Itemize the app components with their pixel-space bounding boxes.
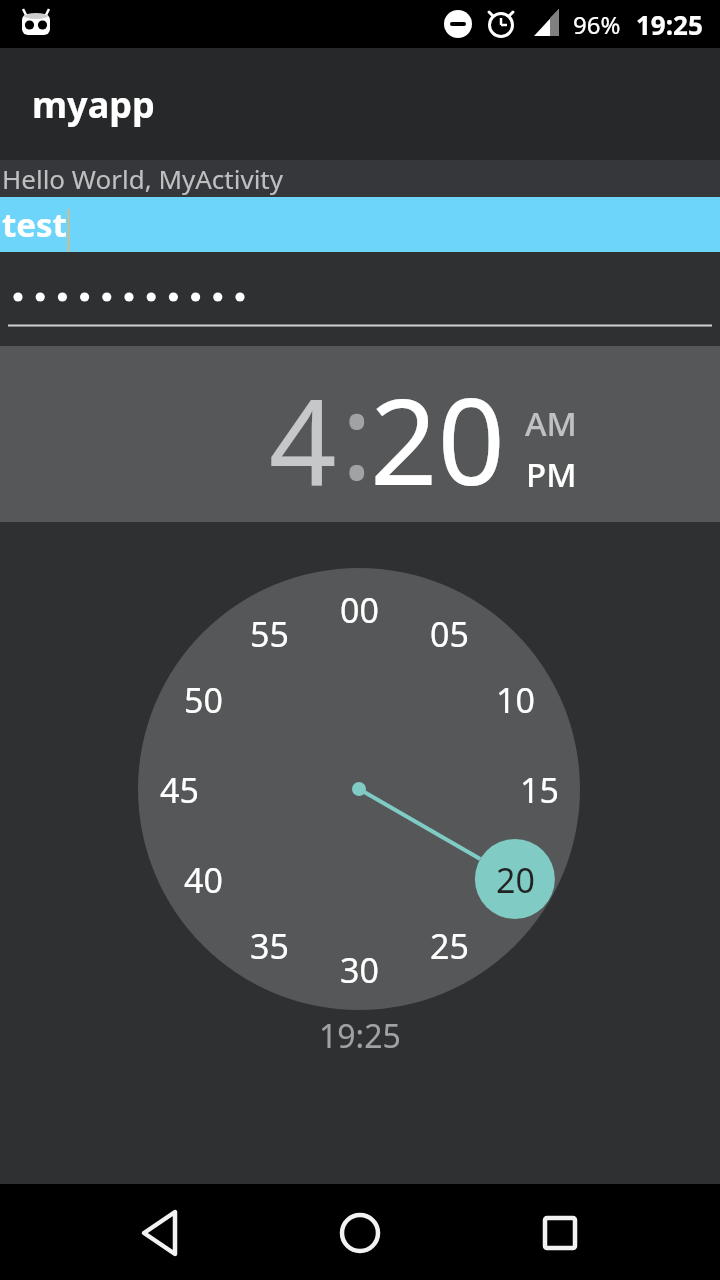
button[interactable]: 10 bbox=[0, 0, 70, 44]
button[interactable]: 55 bbox=[0, 0, 70, 44]
button[interactable]: 05 bbox=[0, 0, 70, 44]
staticText: 40 bbox=[184, 857, 223, 901]
button[interactable]: 15 bbox=[0, 0, 70, 44]
staticText: myapp bbox=[32, 80, 155, 129]
staticText: 05 bbox=[430, 611, 469, 655]
staticText: 20 bbox=[370, 359, 505, 520]
button[interactable]: 45 bbox=[0, 0, 70, 44]
staticText: test bbox=[2, 202, 67, 247]
staticText: PM bbox=[526, 452, 577, 496]
staticText: 20 bbox=[496, 857, 535, 901]
button[interactable] bbox=[120, 1193, 200, 1273]
staticText: 15 bbox=[520, 767, 559, 811]
staticText: : bbox=[341, 353, 373, 514]
button[interactable] bbox=[320, 1193, 400, 1273]
button[interactable]: test bbox=[0, 197, 720, 252]
staticText: Hello World, MyActivity bbox=[2, 161, 283, 196]
staticText: 00 bbox=[340, 587, 379, 631]
staticText: 45 bbox=[160, 767, 199, 811]
button[interactable]: 30 bbox=[0, 0, 70, 44]
staticText: 50 bbox=[184, 677, 223, 721]
button[interactable]: 00 bbox=[0, 0, 70, 44]
button[interactable]: 20 bbox=[0, 0, 70, 44]
button[interactable] bbox=[520, 1193, 600, 1273]
staticText: 55 bbox=[250, 611, 289, 655]
staticText: 35 bbox=[250, 923, 289, 967]
staticText: AM bbox=[525, 401, 577, 445]
button[interactable]: 35 bbox=[0, 0, 70, 44]
staticText: 25 bbox=[430, 923, 469, 967]
button[interactable]: 25 bbox=[0, 0, 70, 44]
staticText: 19:25 bbox=[636, 7, 703, 42]
button[interactable]: 50 bbox=[0, 0, 70, 44]
button[interactable]: 40 bbox=[0, 0, 70, 44]
button[interactable] bbox=[0, 252, 720, 346]
staticText: 30 bbox=[340, 947, 379, 991]
staticText: 10 bbox=[496, 677, 535, 721]
staticText: 96% bbox=[573, 8, 621, 41]
staticText: 4 bbox=[269, 359, 337, 520]
staticText: 19:25 bbox=[319, 1014, 401, 1058]
